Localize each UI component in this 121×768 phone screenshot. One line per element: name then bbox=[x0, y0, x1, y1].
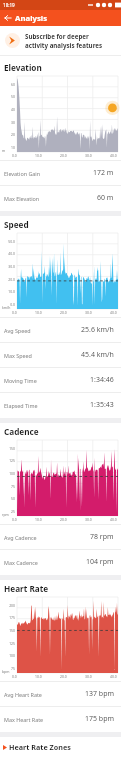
staticText: 150 bbox=[9, 446, 15, 451]
staticText: 137 bpm bbox=[85, 689, 114, 699]
staticText: 20.0 bbox=[60, 310, 67, 315]
staticText: Max Cadence bbox=[4, 559, 38, 566]
staticText: 30.0 bbox=[85, 674, 92, 679]
button[interactable]: Heart Rate Zones bbox=[0, 737, 121, 757]
staticText: 40.0 bbox=[110, 674, 117, 679]
staticText: Cadence bbox=[4, 426, 39, 437]
button[interactable]: Max Elevation bbox=[0, 186, 121, 210]
staticText: 10.0 bbox=[35, 674, 42, 679]
staticText: 60 m bbox=[97, 193, 114, 203]
button[interactable]: Subscribe for deeper bbox=[0, 26, 121, 55]
staticText: 172 m bbox=[93, 168, 114, 178]
staticText: Avg Cadence bbox=[4, 534, 37, 541]
staticText: 25.6 km/h bbox=[81, 325, 114, 335]
staticText: 0.0 bbox=[12, 153, 17, 158]
staticText: Elapsed Time bbox=[4, 402, 38, 409]
staticText: 40 bbox=[11, 107, 15, 112]
staticText: 78 rpm bbox=[90, 532, 114, 542]
staticText: 20.0 bbox=[60, 153, 67, 158]
staticText: 30.0 bbox=[85, 517, 92, 522]
staticText: Heart Rate Zones bbox=[9, 742, 71, 752]
staticText: rpm bbox=[2, 512, 9, 517]
button[interactable]: Moving Time bbox=[0, 368, 121, 392]
staticText: Elevation Gain bbox=[4, 170, 41, 177]
staticText: 40.0 bbox=[110, 153, 117, 158]
button[interactable]: Avg Speed bbox=[0, 318, 121, 342]
staticText: Max Speed bbox=[4, 352, 32, 359]
staticText: 30.0 bbox=[85, 153, 92, 158]
staticText: 50 bbox=[11, 94, 15, 99]
staticText: 0.0 bbox=[12, 310, 17, 315]
staticText: 125 bbox=[9, 641, 15, 646]
staticText: 25 bbox=[11, 509, 15, 514]
staticText: 30.0 bbox=[85, 310, 92, 315]
staticText: 10 bbox=[11, 145, 15, 150]
staticText: 20.0 bbox=[60, 517, 67, 522]
staticText: 175 bbox=[9, 615, 15, 620]
staticText: Speed bbox=[4, 219, 29, 230]
staticText: 200 bbox=[9, 603, 15, 608]
staticText: m bbox=[2, 148, 6, 153]
staticText: 1:35:43 bbox=[90, 400, 114, 410]
staticText: Moving Time bbox=[4, 377, 37, 384]
button[interactable]: Max Heart Rate bbox=[0, 707, 121, 731]
staticText: 10.0 bbox=[35, 310, 42, 315]
button[interactable]: Max Cadence bbox=[0, 550, 121, 574]
button[interactable]: Back bbox=[0, 10, 15, 26]
staticText: Avg Heart Rate bbox=[4, 691, 42, 698]
staticText: km/h bbox=[2, 305, 11, 310]
staticText: 20.0 bbox=[60, 674, 67, 679]
staticText: 0.0 bbox=[12, 674, 17, 679]
staticText: 40.0 bbox=[110, 310, 117, 315]
staticText: Subscribe for deeper bbox=[25, 32, 89, 40]
staticText: activity analysis features bbox=[25, 41, 103, 49]
button[interactable]: Avg Heart Rate bbox=[0, 682, 121, 706]
staticText: Analysis bbox=[15, 13, 48, 24]
staticText: Avg Speed bbox=[4, 327, 31, 334]
staticText: 0.0 bbox=[12, 517, 17, 522]
staticText: 40.0 bbox=[110, 517, 117, 522]
staticText: 150 bbox=[9, 628, 15, 633]
staticText: 40.0 bbox=[8, 251, 15, 256]
staticText: 30.0 bbox=[8, 264, 15, 269]
staticText: bpm bbox=[2, 669, 10, 674]
staticText: Max Elevation bbox=[4, 195, 40, 202]
staticText: 75 bbox=[11, 666, 15, 671]
staticText: 20.0 bbox=[8, 277, 15, 282]
staticText: 125 bbox=[9, 458, 15, 463]
button[interactable]: Elevation Gain bbox=[0, 161, 121, 185]
staticText: 18:19 bbox=[3, 2, 15, 8]
staticText: Heart Rate bbox=[4, 583, 49, 594]
staticText: 10.0 bbox=[35, 153, 42, 158]
staticText: 20 bbox=[11, 132, 15, 137]
staticText: 10.0 bbox=[35, 517, 42, 522]
staticText: 60 bbox=[11, 82, 15, 87]
staticText: 10.0 bbox=[8, 289, 15, 294]
staticText: 100 bbox=[9, 653, 15, 658]
button[interactable]: Elapsed Time bbox=[0, 393, 121, 417]
staticText: 30 bbox=[11, 120, 15, 125]
staticText: 1:34:46 bbox=[90, 375, 114, 385]
staticText: 75 bbox=[11, 484, 15, 489]
staticText: 50.0 bbox=[8, 239, 15, 244]
staticText: Max Heart Rate bbox=[4, 716, 44, 723]
staticText: 50 bbox=[11, 496, 15, 501]
staticText: 175 bpm bbox=[85, 714, 114, 724]
staticText: 45.4 km/h bbox=[81, 350, 114, 360]
staticText: 0.0 bbox=[10, 302, 15, 307]
staticText: Elevation bbox=[4, 62, 42, 73]
button[interactable]: Avg Cadence bbox=[0, 525, 121, 549]
staticText: 104 rpm bbox=[86, 557, 114, 567]
button[interactable]: Max Speed bbox=[0, 343, 121, 367]
staticText: 100 bbox=[9, 471, 15, 476]
